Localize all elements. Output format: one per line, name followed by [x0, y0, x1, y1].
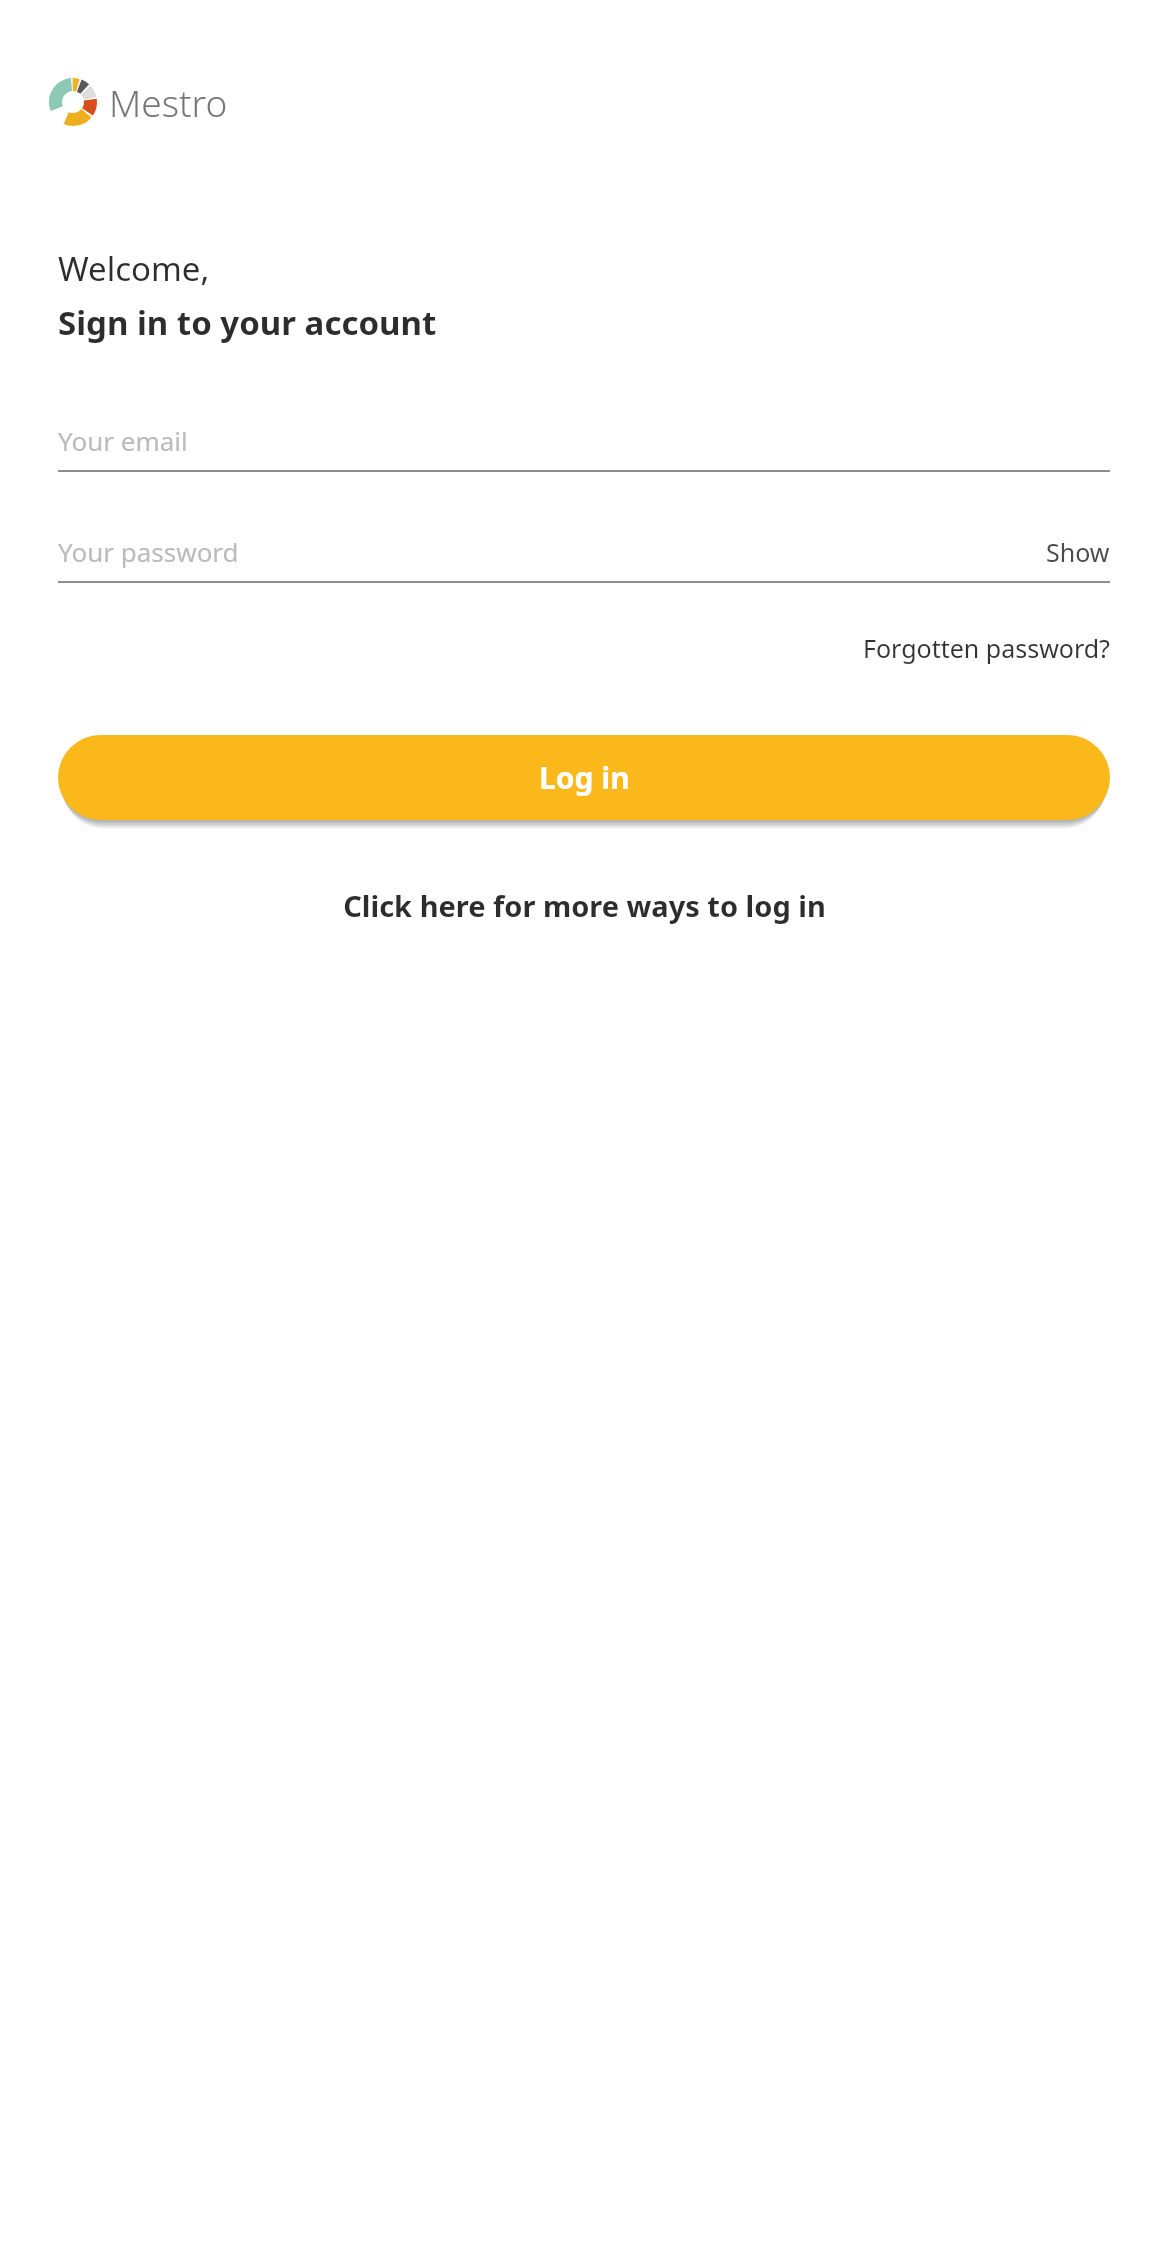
- staticText: Forgotten password?: [863, 631, 1110, 665]
- staticText: Sign in to your account: [58, 300, 437, 345]
- button[interactable]: Show: [1028, 528, 1110, 575]
- staticText: Click here for more ways to log in: [343, 886, 826, 925]
- button[interactable]: Click here for more ways to log in: [58, 878, 1110, 933]
- button[interactable]: Forgotten password?: [863, 623, 1110, 673]
- button[interactable]: Your email: [58, 417, 1110, 472]
- button[interactable]: Log in: [58, 735, 1110, 820]
- staticText: Your email: [58, 423, 188, 458]
- staticText: Log in: [539, 757, 630, 798]
- button[interactable]: Your password: [58, 528, 1028, 575]
- staticText: Show: [1046, 535, 1110, 569]
- staticText: Welcome,: [58, 246, 210, 291]
- button[interactable]: Mestro logo: [47, 75, 230, 129]
- staticText: Your password: [58, 534, 239, 569]
- other: Mestro logo: [49, 78, 97, 126]
- staticText: Mestro: [109, 77, 228, 127]
